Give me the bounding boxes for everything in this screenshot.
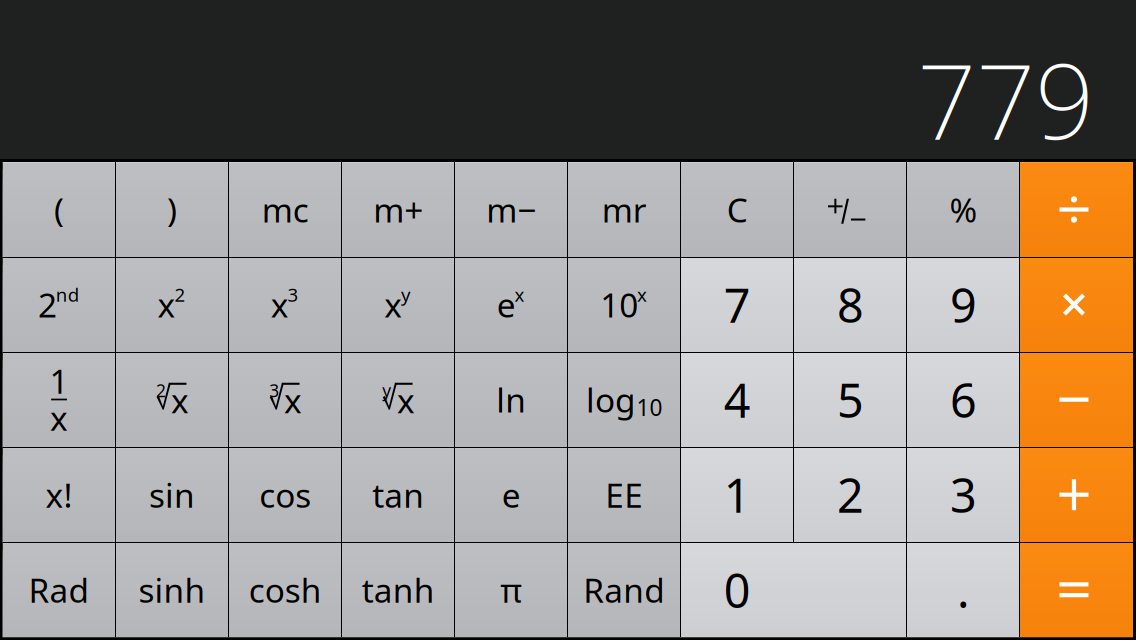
- button[interactable]: 9: [907, 257, 1020, 352]
- staticText: π: [500, 568, 522, 612]
- button[interactable]: ten to the x: [568, 257, 681, 352]
- button[interactable]: clear: [681, 162, 794, 257]
- button[interactable]: close parenthesis: [116, 162, 229, 257]
- staticText: x: [271, 282, 289, 327]
- staticText: e: [502, 473, 521, 517]
- staticText: 9: [950, 274, 977, 336]
- staticText: 4: [724, 369, 751, 431]
- button[interactable]: factorial: [2, 447, 115, 542]
- staticText: 10: [636, 392, 662, 422]
- staticText: sin: [149, 473, 195, 517]
- button[interactable]: e to the x: [455, 257, 568, 352]
- staticText: 5: [837, 369, 864, 431]
- button[interactable]: multiply: [1020, 257, 1133, 352]
- staticText: 6: [950, 369, 977, 431]
- staticText: Rand: [583, 568, 665, 612]
- button[interactable]: y root of x: [342, 352, 455, 447]
- staticText: 3: [287, 282, 298, 307]
- button[interactable]: memory add: [342, 162, 455, 257]
- staticText: y: [382, 379, 391, 402]
- button[interactable]: 6: [907, 352, 1020, 447]
- staticText: ): [167, 187, 177, 232]
- staticText: log: [586, 377, 636, 422]
- staticText: cosh: [249, 568, 322, 612]
- staticText: x: [284, 378, 302, 422]
- staticText: x: [637, 282, 647, 307]
- staticText: y: [401, 282, 411, 307]
- staticText: ln: [496, 377, 526, 422]
- button[interactable]: minus: [1020, 352, 1133, 447]
- staticText: (: [54, 187, 64, 232]
- staticText: mr: [602, 187, 647, 232]
- button[interactable]: cube root: [229, 352, 342, 447]
- button[interactable]: percent: [907, 162, 1020, 257]
- staticText: nd: [56, 282, 79, 307]
- staticText: 2: [174, 282, 185, 307]
- staticText: C: [727, 187, 748, 232]
- button[interactable]: equals: [1020, 542, 1133, 637]
- button[interactable]: 0: [681, 542, 907, 637]
- staticText: m+: [373, 187, 423, 232]
- button[interactable]: e: [455, 447, 568, 542]
- button[interactable]: square root: [116, 352, 229, 447]
- staticText: 2: [38, 282, 57, 327]
- staticText: e: [497, 282, 516, 327]
- button[interactable]: second: [2, 257, 115, 352]
- button[interactable]: decimal point: [907, 542, 1020, 637]
- button[interactable]: memory clear: [229, 162, 342, 257]
- button[interactable]: one over x: [2, 352, 115, 447]
- staticText: %: [949, 187, 977, 232]
- button[interactable]: exponent: [568, 447, 681, 542]
- staticText: tan: [372, 473, 424, 517]
- staticText: 2: [156, 379, 166, 402]
- button[interactable]: open parenthesis: [2, 162, 115, 257]
- staticText: 1: [49, 359, 68, 403]
- button[interactable]: 4: [681, 352, 794, 447]
- button[interactable]: hyperbolic tangent: [342, 542, 455, 637]
- button[interactable]: hyperbolic sine: [115, 542, 228, 637]
- staticText: 2: [837, 464, 864, 526]
- staticText: x: [158, 282, 176, 327]
- button[interactable]: plus: [1020, 447, 1133, 542]
- button[interactable]: memory subtract: [455, 162, 568, 257]
- staticText: x: [514, 282, 524, 307]
- button[interactable]: plus minus: [794, 162, 907, 257]
- staticText: 10: [600, 282, 638, 327]
- button[interactable]: 2: [794, 447, 907, 542]
- staticText: .: [957, 559, 970, 621]
- staticText: x: [397, 378, 415, 422]
- staticText: sinh: [139, 568, 206, 612]
- button[interactable]: 8: [794, 257, 907, 352]
- button[interactable]: radians: [2, 542, 115, 637]
- staticText: EE: [605, 473, 643, 517]
- button[interactable]: hyperbolic cosine: [229, 542, 342, 637]
- staticText: 3: [269, 379, 279, 402]
- button[interactable]: random: [568, 542, 681, 637]
- staticText: m−: [486, 187, 536, 232]
- staticText: x: [384, 282, 402, 327]
- staticText: x!: [45, 473, 72, 517]
- button[interactable]: x cubed: [229, 257, 342, 352]
- staticText: 1: [724, 464, 751, 526]
- button[interactable]: tangent: [342, 447, 455, 542]
- button[interactable]: pi: [455, 542, 568, 637]
- button[interactable]: 3: [907, 447, 1020, 542]
- button[interactable]: cosine: [229, 447, 342, 542]
- button[interactable]: memory recall: [568, 162, 681, 257]
- button[interactable]: sine: [116, 447, 229, 542]
- staticText: 8: [837, 274, 864, 336]
- button[interactable]: 1: [681, 447, 794, 542]
- button[interactable]: x squared: [116, 257, 229, 352]
- button[interactable]: natural log: [455, 352, 568, 447]
- button[interactable]: log base ten: [568, 352, 681, 447]
- staticText: Rad: [28, 568, 89, 612]
- button[interactable]: 5: [794, 352, 907, 447]
- staticText: 7: [724, 274, 751, 336]
- button[interactable]: 7: [681, 257, 794, 352]
- button[interactable]: x to the y: [342, 257, 455, 352]
- staticText: tanh: [362, 568, 435, 612]
- staticText: cos: [259, 473, 311, 517]
- button[interactable]: divide: [1020, 162, 1133, 257]
- staticText: x: [171, 378, 189, 422]
- staticText: x: [50, 396, 68, 440]
